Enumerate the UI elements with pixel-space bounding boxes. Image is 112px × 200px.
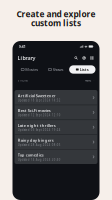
staticText: Library [17, 54, 35, 62]
button[interactable]: Movies [16, 65, 43, 74]
staticText: Movies [25, 67, 38, 72]
staticText: custom lists [31, 17, 81, 29]
staticText: Lists [80, 67, 89, 72]
staticText: Top comedies [18, 152, 44, 158]
staticText: Shows [53, 67, 64, 72]
staticText: Late night thrillers [18, 123, 56, 128]
staticText: Updated 12 Sept 2024 12:10 [18, 113, 61, 117]
staticText: Rainy day bingers [18, 137, 54, 143]
button[interactable]: Best Sci-Fi movies [14, 105, 97, 120]
button[interactable]: Rainy day bingers [14, 134, 97, 149]
staticText: Updated 18 Sept 2024 14:32 [18, 99, 61, 102]
button[interactable]: Name [85, 79, 94, 82]
staticText: 5 items [17, 79, 27, 82]
staticText: Updated 03 Sept 2024 19:24 [18, 128, 61, 132]
button[interactable]: Top comedies [14, 149, 97, 164]
staticText: Name [85, 79, 92, 82]
button[interactable]: Grid view [90, 56, 93, 60]
staticText: Best Sci-Fi movies [18, 108, 51, 113]
button[interactable]: Account [82, 56, 86, 60]
staticText: Artificial Sweetener [18, 93, 56, 98]
staticText: Create and explore [16, 8, 95, 20]
button[interactable]: Search [74, 56, 78, 60]
button[interactable]: Late night thrillers [14, 120, 97, 134]
button[interactable]: Artificial Sweetener [14, 90, 97, 105]
button[interactable]: Shows [43, 65, 69, 74]
staticText: 9:41 [18, 44, 25, 49]
staticText: Updated 28 Aug 2024 08:05 [18, 143, 61, 147]
button[interactable]: Lists [69, 65, 95, 74]
staticText: Updated 14 Aug 2024 20:40 [18, 158, 61, 161]
